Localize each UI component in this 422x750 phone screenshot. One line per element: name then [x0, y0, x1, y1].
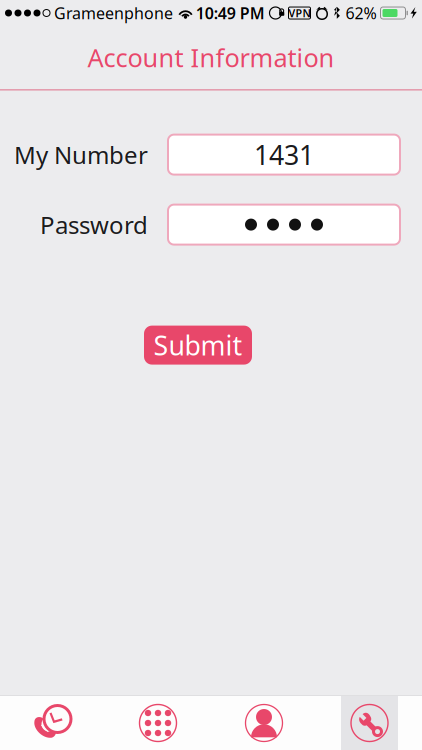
staticText: My Number — [14, 139, 148, 171]
staticText: Account Information — [87, 41, 334, 74]
button[interactable]: Contacts — [211, 696, 317, 750]
staticText: Submit — [153, 327, 242, 363]
staticText: Password — [40, 209, 148, 241]
staticText: 1431 — [254, 137, 314, 172]
button[interactable]: Keypad — [105, 696, 211, 750]
staticText: Grameenphone — [50, 2, 173, 24]
button[interactable]: Settings — [317, 696, 422, 750]
staticText: 10:49 PM — [196, 2, 265, 24]
button[interactable]: Submit — [144, 326, 252, 365]
staticText: 62% — [345, 2, 376, 24]
button[interactable]: Recents — [0, 696, 105, 750]
staticText: VPN — [288, 6, 310, 20]
